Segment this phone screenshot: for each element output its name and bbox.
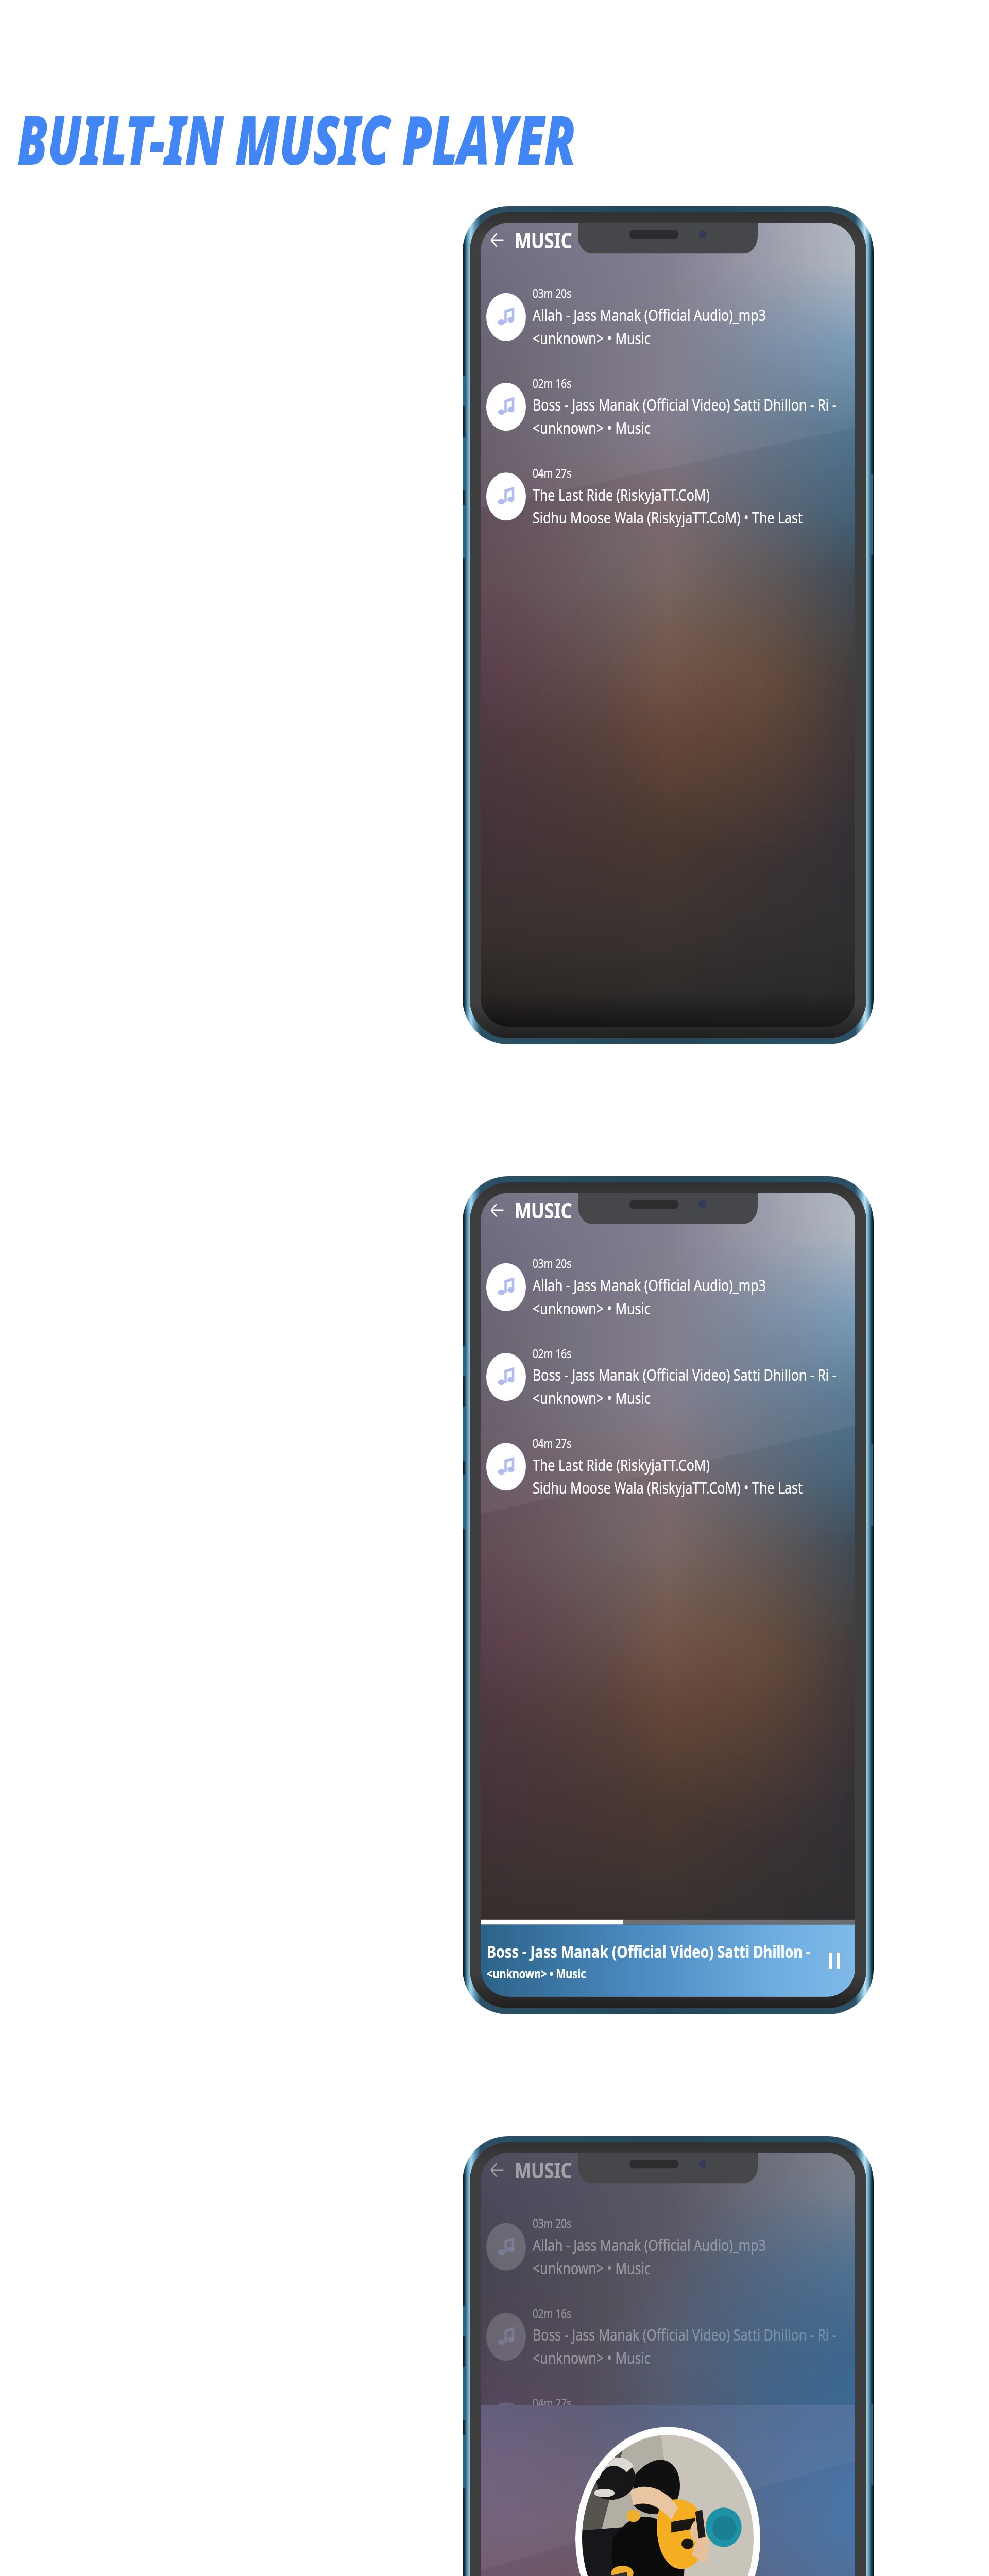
staticText: 02m 16s [533, 375, 572, 392]
staticText: 03m 20s [533, 1256, 572, 1272]
staticText: <unknown> • Music [533, 327, 651, 348]
staticText: 02m 16s [533, 2305, 572, 2321]
button[interactable]: 03m 20s [481, 272, 855, 362]
button[interactable]: 02m 16s [481, 2292, 855, 2381]
staticText: 03m 20s [533, 2215, 572, 2232]
button[interactable]: 04m 27s [481, 1421, 855, 1511]
staticText: 02m 16s [533, 1345, 572, 1362]
staticText: <unknown> • Music [533, 2347, 651, 2368]
staticText: Boss - Jass Manak (Official Video) Satti… [533, 2324, 837, 2345]
staticText: Sidhu Moose Wala (RiskyjaTT.CoM) • The L… [533, 1477, 803, 1498]
button[interactable]: Pause [818, 1941, 851, 1981]
staticText: Sidhu Moose Wala (RiskyjaTT.CoM) • The L… [533, 507, 803, 528]
staticText: 04m 27s [533, 2395, 572, 2411]
staticText: Boss - Jass Manak (Official Video) Satti… [533, 394, 837, 415]
staticText: <unknown> • Music [487, 1965, 586, 1982]
staticText: MUSIC [515, 226, 572, 254]
staticText: The Last Ride (RiskyjaTT.CoM) [533, 484, 710, 505]
button[interactable]: 04m 27s [481, 2381, 855, 2471]
button[interactable]: 03m 20s [481, 2202, 855, 2292]
button[interactable]: 03m 20s [481, 1242, 855, 1332]
staticText: <unknown> • Music [533, 2257, 651, 2278]
button[interactable]: Back [484, 2154, 510, 2186]
staticText: The Last Ride (RiskyjaTT.CoM) [533, 1454, 710, 1475]
staticText: 04m 27s [533, 1435, 572, 1451]
staticText: Allah - Jass Manak (Official Audio)_mp3 [533, 304, 766, 325]
staticText: Boss - Jass Manak (Official Video) Satti… [487, 1940, 818, 1963]
button[interactable]: 02m 16s [481, 362, 855, 451]
staticText: Allah - Jass Manak (Official Audio)_mp3 [533, 1274, 766, 1296]
button[interactable]: 02m 16s [481, 1332, 855, 1421]
staticText: 04m 27s [533, 465, 572, 481]
staticText: <unknown> • Music [533, 1387, 651, 1408]
button[interactable]: 04m 27s [481, 451, 855, 541]
staticText: MUSIC [515, 2156, 572, 2184]
staticText: <unknown> • Music [533, 1297, 651, 1319]
staticText: Boss - Jass Manak (Official Video) Satti… [533, 1364, 837, 1385]
staticText: MUSIC [515, 1196, 572, 1225]
button[interactable]: Boss - Jass Manak (Official Video) Satti… [481, 1925, 855, 1997]
staticText: Sidhu Moose Wala (RiskyjaTT.CoM) • The L… [533, 2437, 803, 2458]
staticText: Allah - Jass Manak (Official Audio)_mp3 [533, 2234, 766, 2255]
staticText: BUILT-IN MUSIC PLAYER [17, 93, 576, 184]
button[interactable]: Back [484, 224, 510, 256]
staticText: The Last Ride (RiskyjaTT.CoM) [533, 2414, 710, 2435]
staticText: <unknown> • Music [533, 417, 651, 438]
button[interactable]: Back [484, 1194, 510, 1226]
staticText: 03m 20s [533, 286, 572, 302]
